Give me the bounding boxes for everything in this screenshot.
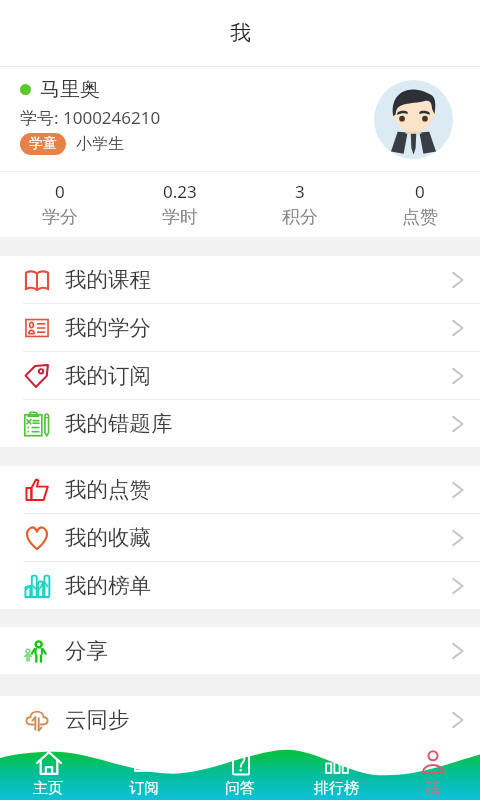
button[interactable]: 我 [384, 740, 480, 800]
button[interactable]: 我的错题库 [0, 400, 480, 447]
staticText: 我的榜单 [65, 572, 151, 599]
staticText: 0.23 [163, 180, 197, 203]
button[interactable]: 我的订阅 [0, 352, 480, 399]
button[interactable]: 我的点赞 [0, 466, 480, 513]
staticText: 小学生 [76, 134, 124, 154]
staticText: 学分 [42, 206, 78, 229]
staticText: 我的收藏 [65, 524, 151, 551]
button[interactable]: 排行榜 [288, 740, 384, 800]
staticText: 我的订阅 [65, 362, 151, 389]
staticText: 我的学分 [65, 314, 151, 341]
staticText: 3 [295, 180, 305, 203]
staticText: 订阅 [129, 779, 159, 798]
staticText: 学号: 1000246210 [20, 106, 161, 129]
staticText: 问答 [225, 779, 255, 798]
staticText: 排行榜 [314, 779, 359, 798]
button[interactable]: 主页 [0, 740, 96, 800]
button[interactable]: 问答 [192, 740, 288, 800]
staticText: 云同步 [65, 706, 130, 733]
button[interactable]: 我的收藏 [0, 514, 480, 561]
button[interactable]: 我的课程 [0, 256, 480, 303]
staticText: 我 [230, 20, 251, 46]
staticText: 我的错题库 [65, 410, 173, 437]
button[interactable]: 订阅 [96, 740, 192, 800]
staticText: 我的点赞 [65, 476, 151, 503]
button[interactable]: 分享 [0, 627, 480, 674]
staticText: 0 [415, 180, 425, 203]
staticText: 学时 [162, 206, 198, 229]
staticText: 马里奥 [40, 77, 100, 102]
staticText: 我的课程 [65, 266, 151, 293]
staticText: 我 [425, 779, 440, 798]
staticText: 分享 [65, 637, 108, 664]
staticText: 点赞 [402, 206, 438, 229]
staticText: 主页 [33, 779, 63, 798]
staticText: 积分 [282, 206, 318, 229]
button[interactable]: 我的学分 [0, 304, 480, 351]
button[interactable]: 云同步 [0, 696, 480, 743]
button[interactable]: 我的榜单 [0, 562, 480, 609]
staticText: 学童 [29, 135, 57, 153]
staticText: 0 [55, 180, 65, 203]
